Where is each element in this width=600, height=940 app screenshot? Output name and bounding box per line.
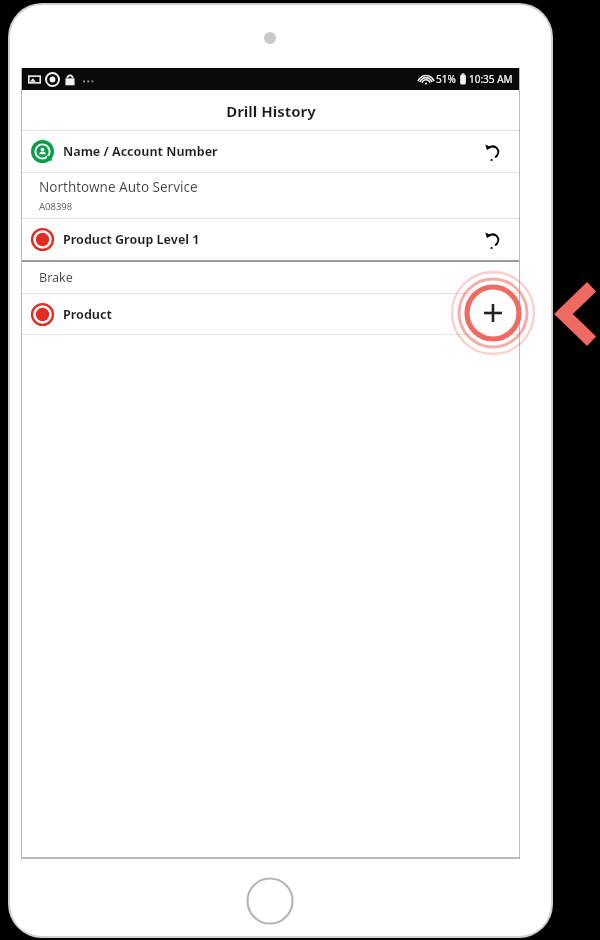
staticText: Product Group Level 1 bbox=[63, 231, 200, 248]
button[interactable]: Name / Account Number bbox=[22, 131, 519, 172]
button[interactable]: Product bbox=[22, 294, 519, 334]
button[interactable]: Reset bbox=[479, 227, 505, 253]
button[interactable]: Northtowne Auto Service bbox=[22, 173, 519, 218]
staticText: 10:35 AM bbox=[469, 72, 513, 86]
staticText: Northtowne Auto Service bbox=[39, 178, 198, 196]
button[interactable]: Reset bbox=[479, 139, 505, 165]
button[interactable]: Add bbox=[447, 267, 539, 359]
staticText: Name / Account Number bbox=[63, 143, 218, 160]
staticText: Product bbox=[63, 306, 112, 323]
button[interactable]: Brake bbox=[22, 262, 519, 293]
staticText: Brake bbox=[39, 269, 73, 286]
staticText: 51% bbox=[436, 72, 456, 86]
staticText: Drill History bbox=[226, 101, 316, 121]
staticText: A08398 bbox=[39, 200, 73, 213]
button[interactable]: Product Group Level 1 bbox=[22, 219, 519, 260]
button[interactable]: Previous bbox=[560, 283, 594, 345]
